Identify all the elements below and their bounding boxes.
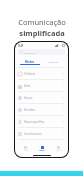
staticText: Minhas solicitações	[18, 60, 41, 63]
button[interactable]: Solicitações	[34, 146, 50, 151]
button[interactable]: Perfil	[50, 146, 66, 151]
button[interactable]: Acesso	[15, 92, 68, 103]
staticText: Telefonia	[24, 72, 36, 76]
button[interactable]: Pesquisar	[18, 49, 65, 55]
staticText: Novos aparelhos	[24, 120, 45, 124]
staticText: Comunicação	[18, 17, 66, 27]
button[interactable]: Novos aparelhos	[15, 116, 68, 127]
staticText: simplificada	[19, 28, 65, 38]
staticText: 9:41	[18, 44, 24, 48]
button[interactable]: Início	[17, 146, 34, 151]
staticText: Rede	[24, 84, 31, 88]
staticText: Reuniões	[24, 108, 36, 112]
staticText: Licenciamento	[24, 132, 42, 136]
button[interactable]: Reuniões	[15, 104, 68, 115]
button[interactable]: Rede	[15, 80, 68, 91]
button[interactable]: Todas as solicitações	[41, 58, 65, 67]
button[interactable]: Telefonia	[15, 68, 68, 79]
staticText: Acesso	[24, 96, 33, 100]
staticText: Pesquisar	[24, 51, 35, 54]
button[interactable]: Minhas solicitações	[18, 58, 41, 67]
button[interactable]: Licenciamento	[15, 128, 68, 139]
staticText: Todas as solicitações	[41, 60, 65, 63]
